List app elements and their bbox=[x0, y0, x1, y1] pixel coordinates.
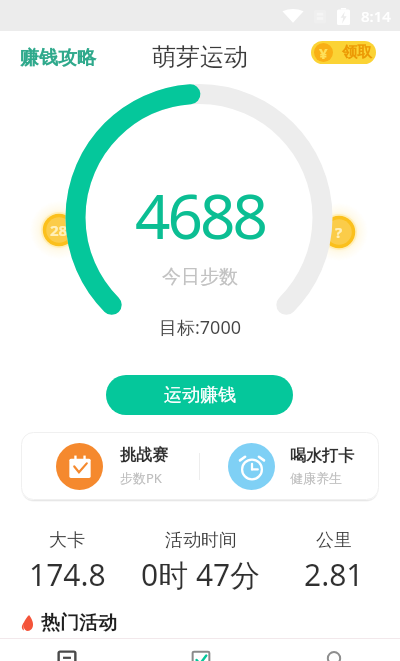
staticText: 挑战赛 bbox=[120, 445, 168, 465]
staticText: 8:14 bbox=[361, 6, 391, 26]
staticText: 今日步数 bbox=[162, 265, 238, 289]
staticText: 运动赚钱 bbox=[164, 384, 236, 407]
button[interactable]: Tasks bbox=[134, 639, 267, 661]
staticText: 28 bbox=[50, 220, 68, 240]
button[interactable]: 赚钱攻略 bbox=[8, 41, 108, 75]
staticText: 领取 bbox=[342, 43, 372, 62]
button[interactable]: Home bbox=[0, 639, 134, 661]
button[interactable]: 领取 bbox=[311, 41, 376, 64]
staticText: 热门活动 bbox=[41, 611, 117, 635]
staticText: 萌芽运动 bbox=[152, 42, 248, 72]
staticText: 赚钱攻略 bbox=[20, 46, 96, 70]
staticText: 步数PK bbox=[120, 469, 162, 487]
staticText: ? bbox=[335, 222, 343, 242]
button[interactable]: Profile bbox=[267, 639, 400, 661]
staticText: 目标:7000 bbox=[159, 315, 242, 340]
staticText: 0时 47分 bbox=[141, 554, 261, 595]
button[interactable]: 挑战赛 bbox=[21, 432, 199, 500]
button[interactable]: 喝水打卡 bbox=[200, 432, 379, 500]
staticText: 活动时间 bbox=[165, 529, 237, 552]
staticText: 4688 bbox=[135, 173, 265, 257]
staticText: 健康养生 bbox=[290, 470, 342, 486]
staticText: 喝水打卡 bbox=[290, 446, 354, 466]
button[interactable]: 运动赚钱 bbox=[106, 375, 293, 415]
staticText: 174.8 bbox=[29, 554, 106, 595]
staticText: 2.81 bbox=[304, 554, 364, 595]
staticText: ¥ bbox=[319, 43, 328, 62]
staticText: 公里 bbox=[316, 529, 352, 552]
staticText: 大卡 bbox=[49, 529, 85, 552]
